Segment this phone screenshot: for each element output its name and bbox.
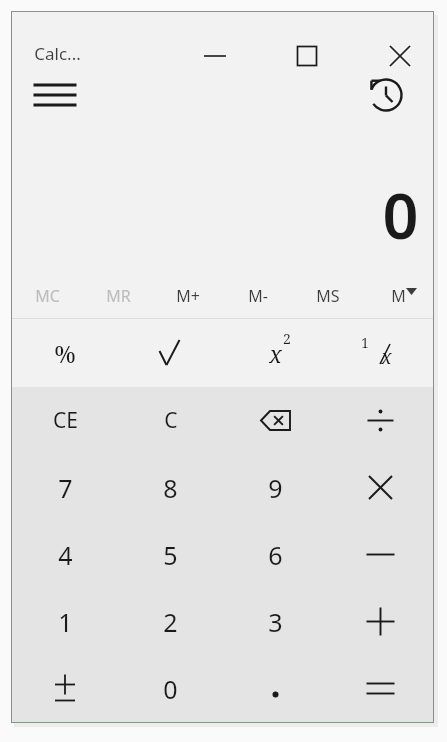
staticText: MS bbox=[316, 285, 340, 307]
button[interactable]: x bbox=[223, 319, 328, 387]
button[interactable]: Plus bbox=[328, 588, 433, 655]
button[interactable]: Menu bbox=[26, 71, 84, 119]
button[interactable]: Close bbox=[369, 25, 431, 69]
button[interactable]: MC bbox=[12, 274, 83, 318]
button[interactable]: M bbox=[363, 274, 433, 318]
button[interactable]: 0 bbox=[118, 655, 223, 722]
staticText: M+ bbox=[176, 285, 200, 307]
staticText: C bbox=[164, 406, 178, 435]
staticText: 5 bbox=[163, 538, 178, 572]
button[interactable]: 8 bbox=[118, 454, 223, 521]
staticText: 9 bbox=[268, 471, 283, 505]
staticText: 4 bbox=[58, 538, 73, 572]
staticText: 2 bbox=[283, 329, 291, 348]
button[interactable]: MS bbox=[293, 274, 363, 318]
button[interactable]: Square root bbox=[118, 319, 223, 387]
staticText: 7 bbox=[58, 471, 73, 505]
staticText: 3 bbox=[268, 605, 283, 639]
staticText: % bbox=[54, 337, 76, 370]
staticText: MC bbox=[35, 285, 60, 307]
staticText: 8 bbox=[163, 471, 178, 505]
staticText: M bbox=[391, 285, 406, 307]
button[interactable]: Minus bbox=[328, 521, 433, 588]
button[interactable]: 2 bbox=[118, 588, 223, 655]
staticText: 1 bbox=[58, 605, 73, 639]
staticText: MR bbox=[106, 285, 131, 307]
button[interactable]: CE bbox=[12, 387, 118, 454]
button[interactable]: 4 bbox=[12, 521, 118, 588]
button[interactable]: M- bbox=[223, 274, 293, 318]
staticText: 0 bbox=[163, 672, 178, 706]
staticText: x bbox=[269, 338, 282, 369]
button[interactable]: Plus minus bbox=[12, 655, 118, 722]
staticText: 0 bbox=[382, 172, 419, 258]
staticText: 1 bbox=[361, 333, 369, 352]
button[interactable]: Equals bbox=[328, 655, 433, 722]
staticText: 6 bbox=[268, 538, 283, 572]
button[interactable]: 9 bbox=[223, 454, 328, 521]
staticText: 2 bbox=[163, 605, 178, 639]
button[interactable]: Multiply bbox=[328, 454, 433, 521]
button[interactable]: % bbox=[12, 319, 118, 387]
button[interactable]: Backspace bbox=[223, 387, 328, 454]
button[interactable]: C bbox=[118, 387, 223, 454]
button[interactable]: Divide bbox=[328, 387, 433, 454]
button[interactable]: History bbox=[361, 71, 411, 119]
button[interactable]: Maximize bbox=[276, 25, 338, 69]
button[interactable]: 3 bbox=[223, 588, 328, 655]
button[interactable]: Minimize bbox=[184, 25, 246, 69]
button[interactable]: 7 bbox=[12, 454, 118, 521]
button[interactable]: 1 bbox=[12, 588, 118, 655]
staticText: CE bbox=[53, 406, 78, 435]
button[interactable]: M+ bbox=[153, 274, 223, 318]
button[interactable]: Decimal point bbox=[223, 655, 328, 722]
staticText: Calc... bbox=[34, 42, 81, 65]
button[interactable]: MR bbox=[83, 274, 153, 318]
staticText: x bbox=[381, 344, 392, 370]
button[interactable]: 6 bbox=[223, 521, 328, 588]
button[interactable]: 1 bbox=[328, 319, 433, 387]
button[interactable]: 5 bbox=[118, 521, 223, 588]
staticText: M- bbox=[248, 285, 268, 307]
